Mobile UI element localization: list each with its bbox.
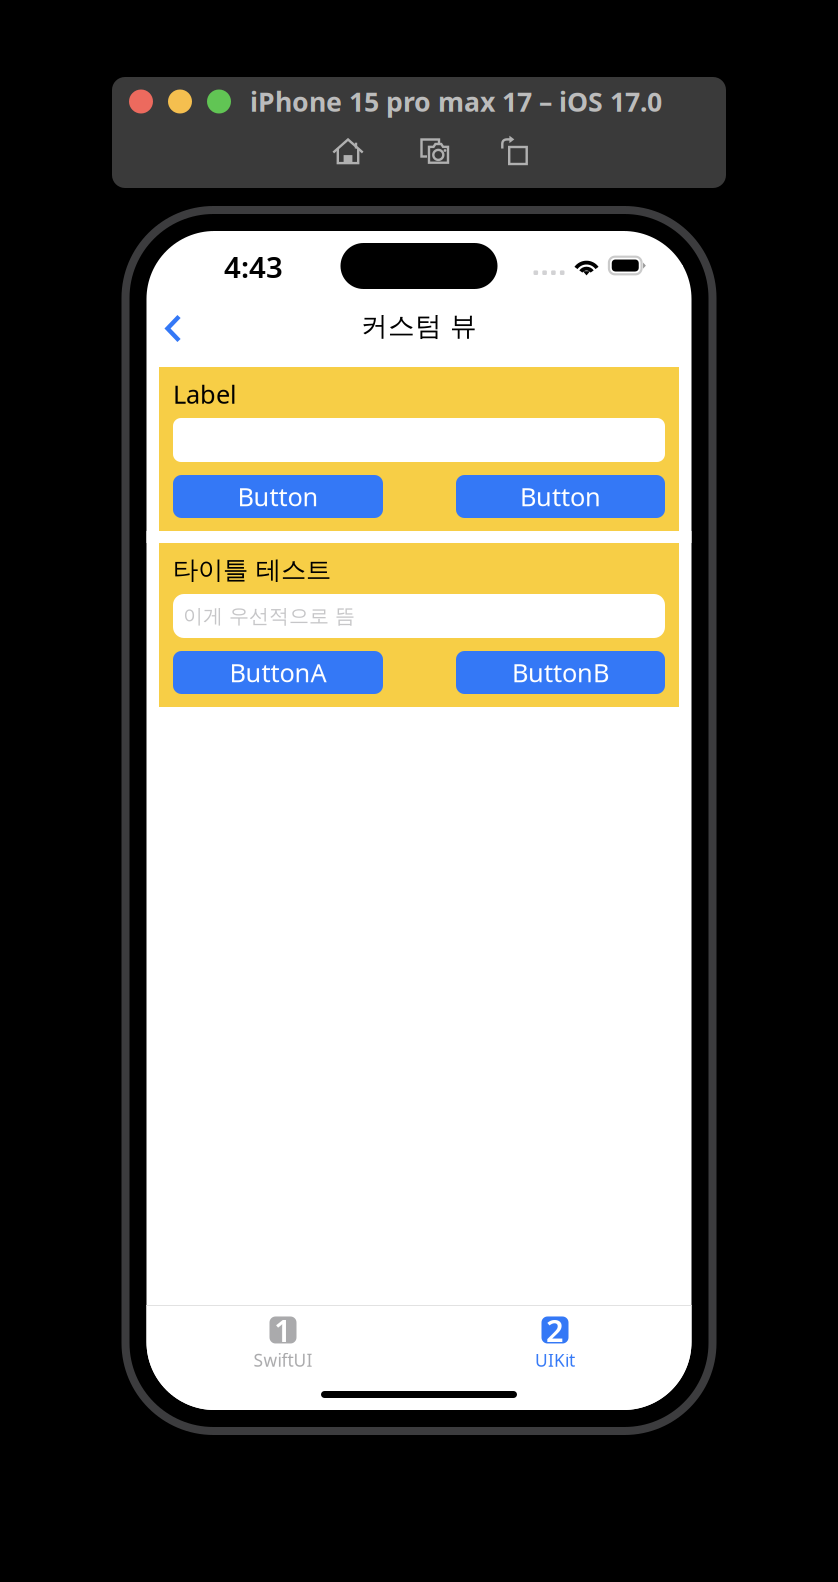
staticText: Label [173,377,237,411]
button[interactable]: 2 [419,1306,691,1379]
staticText: 타이틀 테스트 [173,554,331,585]
staticText: ButtonA [229,656,326,689]
button[interactable]: ButtonB [456,651,665,694]
button[interactable]: Screenshot [392,130,478,171]
button[interactable]: Back [146,310,202,353]
staticText: iPhone 15 pro max 17 – iOS 17.0 [250,84,662,119]
staticText: 4:43 [224,247,283,286]
staticText: 2 [546,1310,564,1350]
button[interactable]: ButtonA [173,651,383,694]
button[interactable]: Button [456,475,665,518]
button[interactable]: Button [173,475,383,518]
staticText: UIKit [535,1348,575,1371]
staticText: Button [237,480,318,513]
staticText: Button [520,480,601,513]
staticText: 1 [274,1310,292,1350]
button[interactable]: 1 [147,1306,419,1379]
staticText: ButtonB [512,656,609,689]
staticText: SwiftUI [253,1348,312,1371]
button[interactable]: Rotate [478,130,558,171]
staticText: 이게 우선적으로 뜸 [183,604,355,628]
staticText: 커스텀 뷰 [361,310,477,342]
button[interactable]: Home [304,130,392,171]
